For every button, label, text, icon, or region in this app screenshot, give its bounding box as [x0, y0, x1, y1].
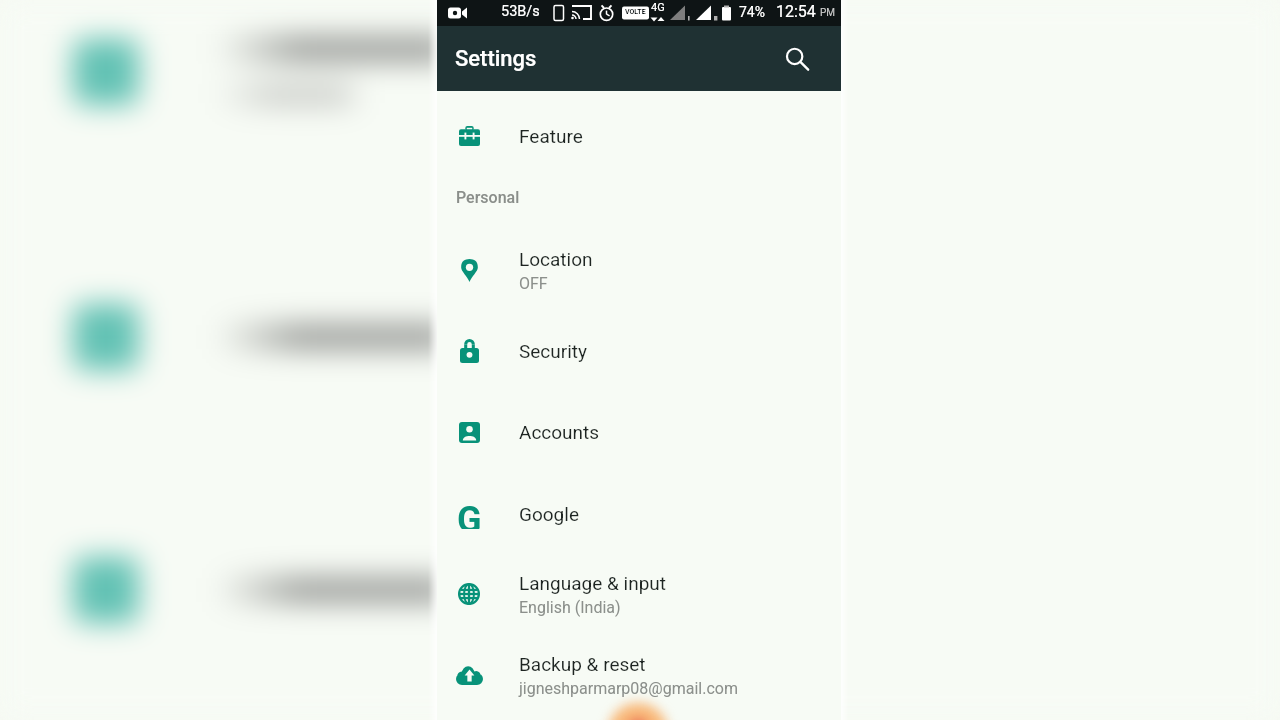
staticText: English (India)	[519, 598, 621, 617]
button[interactable]: Location	[437, 239, 841, 301]
staticText: Location	[519, 248, 593, 270]
staticText: PM	[820, 7, 836, 19]
button[interactable]: G	[437, 483, 841, 545]
button[interactable]: Language & input	[437, 563, 841, 625]
staticText: 53B/s	[501, 3, 540, 20]
staticText: Accounts	[519, 421, 600, 443]
staticText: Personal	[456, 188, 520, 207]
button[interactable]: Backup & reset	[437, 644, 841, 706]
staticText: Settings	[455, 46, 537, 72]
staticText: jigneshparmarp08@gmail.com	[519, 679, 738, 698]
staticText: G	[457, 499, 482, 529]
staticText: OFF	[519, 274, 548, 293]
staticText: 74%	[739, 4, 765, 20]
button[interactable]: Security	[437, 320, 841, 382]
button[interactable]: Search	[775, 37, 819, 81]
staticText: Security	[519, 340, 588, 362]
staticText: Feature	[519, 125, 583, 147]
button[interactable]: Accounts	[437, 401, 841, 463]
staticText: Language & input	[519, 572, 666, 594]
button[interactable]: Feature	[437, 105, 841, 167]
staticText: Backup & reset	[519, 653, 646, 675]
staticText: 4G	[651, 1, 665, 14]
staticText: VOLTE	[625, 8, 646, 16]
staticText: 12:54	[776, 2, 816, 21]
staticText: Google	[519, 503, 579, 525]
